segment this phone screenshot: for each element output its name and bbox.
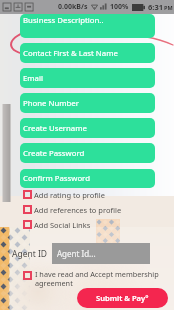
button[interactable]: Business Description.. — [20, 14, 155, 38]
button[interactable]: Add rating to profile — [20, 187, 155, 202]
staticText: 0.00kB/s — [58, 2, 88, 12]
button[interactable]: Agent Id... — [52, 243, 150, 264]
staticText: Phone Number — [23, 98, 79, 109]
staticText: Business Description.. — [23, 15, 104, 26]
staticText: Submit & Pay° — [96, 293, 149, 303]
button[interactable]: Contact First & Last Name — [20, 43, 155, 63]
staticText: Agent Id... — [57, 248, 96, 259]
button[interactable]: I have read and Accept membership agreem… — [23, 269, 169, 289]
staticText: Agent ID — [12, 248, 48, 260]
button[interactable]: Add references to profile — [20, 202, 155, 217]
button[interactable]: Create Password — [20, 143, 155, 163]
staticText: Confirm Password — [23, 173, 90, 184]
button[interactable]: Phone Number — [20, 93, 155, 113]
button[interactable]: Confirm Password — [20, 169, 155, 188]
staticText: PM — [164, 4, 173, 11]
staticText: Create Username — [23, 123, 87, 134]
staticText: Add references to profile — [34, 205, 122, 215]
staticText: Add rating to profile — [34, 190, 105, 200]
button[interactable]: Create Username — [20, 118, 155, 138]
staticText: Email — [23, 73, 44, 84]
button[interactable]: Add Social Links — [20, 217, 155, 232]
staticText: 100% — [110, 2, 129, 12]
staticText: Add Social Links — [34, 220, 91, 230]
button[interactable]: Submit & Pay° — [77, 288, 168, 308]
staticText: Contact First & Last Name — [23, 48, 118, 59]
button[interactable]: Email — [20, 68, 155, 88]
staticText: Create Password — [23, 148, 85, 159]
staticText: 6:31 — [148, 2, 163, 12]
staticText: I have read and Accept membership agreem… — [35, 269, 159, 289]
